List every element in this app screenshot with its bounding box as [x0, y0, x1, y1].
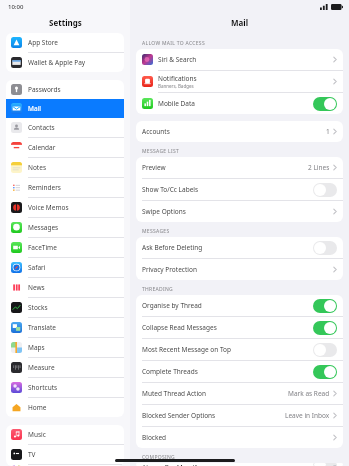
- staticText: Always Bcc Myself: [142, 463, 197, 466]
- button[interactable]: Home: [6, 398, 124, 417]
- staticText: Mobile Data: [158, 99, 195, 108]
- button[interactable]: Muted Thread Action: [136, 383, 343, 404]
- button[interactable]: Maps: [6, 338, 124, 357]
- staticText: Contacts: [28, 123, 55, 132]
- button[interactable]: Swipe Options: [136, 201, 343, 222]
- button[interactable]: Off: [313, 343, 337, 357]
- staticText: Safari: [28, 263, 46, 272]
- staticText: Ask Before Deleting: [142, 243, 203, 252]
- button[interactable]: Mobile Data: [136, 93, 343, 114]
- staticText: Siri & Search: [158, 55, 197, 64]
- staticText: Muted Thread Action: [142, 389, 207, 398]
- button[interactable]: Complete Threads: [136, 361, 343, 382]
- button[interactable]: On: [313, 321, 337, 335]
- button[interactable]: Show To/Cc Labels: [136, 179, 343, 200]
- button[interactable]: Translate: [6, 318, 124, 337]
- button[interactable]: Accounts: [136, 121, 343, 142]
- button[interactable]: Shortcuts: [6, 378, 124, 397]
- staticText: Collapse Read Messages: [142, 323, 217, 332]
- staticText: TV: [28, 450, 36, 459]
- button[interactable]: Collapse Read Messages: [136, 317, 343, 338]
- staticText: Blocked Sender Options: [142, 411, 216, 420]
- staticText: Leave in Inbox: [285, 411, 330, 420]
- button[interactable]: News: [6, 278, 124, 297]
- staticText: Reminders: [28, 183, 61, 192]
- button[interactable]: Ask Before Deleting: [136, 237, 343, 258]
- staticText: Wallet & Apple Pay: [28, 58, 86, 67]
- staticText: Complete Threads: [142, 367, 198, 376]
- staticText: Banners, Badges: [158, 83, 194, 89]
- staticText: Calendar: [28, 143, 56, 152]
- staticText: FaceTime: [28, 243, 57, 252]
- staticText: Shortcuts: [28, 383, 58, 392]
- staticText: Mail: [231, 17, 249, 28]
- button[interactable]: Most Recent Message on Top: [136, 339, 343, 360]
- button[interactable]: Reminders: [6, 178, 124, 197]
- button[interactable]: Privacy Protection: [136, 259, 343, 280]
- staticText: Maps: [28, 343, 45, 352]
- staticText: MESSAGE LIST: [142, 148, 180, 155]
- button[interactable]: Calendar: [6, 138, 124, 157]
- staticText: Measure: [28, 363, 55, 372]
- button[interactable]: Blocked: [136, 427, 343, 448]
- button[interactable]: Notifications: [136, 71, 343, 92]
- staticText: 2 Lines: [308, 163, 330, 172]
- staticText: Settings: [49, 17, 82, 28]
- button[interactable]: Preview: [136, 157, 343, 178]
- button[interactable]: Off: [313, 183, 337, 197]
- staticText: 10:00: [8, 3, 24, 11]
- staticText: Show To/Cc Labels: [142, 185, 199, 194]
- button[interactable]: Voice Memos: [6, 198, 124, 217]
- staticText: Voice Memos: [28, 203, 69, 212]
- staticText: MESSAGES: [142, 228, 170, 235]
- button[interactable]: Always Bcc Myself: [136, 463, 343, 466]
- button[interactable]: On: [313, 365, 337, 379]
- button[interactable]: Notes: [6, 158, 124, 177]
- staticText: Swipe Options: [142, 207, 186, 216]
- button[interactable]: Wallet & Apple Pay: [6, 53, 124, 72]
- staticText: Notifications: [158, 74, 197, 83]
- button[interactable]: Passwords: [6, 80, 124, 99]
- staticText: Mark as Read: [288, 389, 330, 398]
- button[interactable]: On: [313, 299, 337, 313]
- button[interactable]: Off: [313, 463, 337, 466]
- staticText: Most Recent Message on Top: [142, 345, 232, 354]
- button[interactable]: Photos: [6, 465, 124, 466]
- staticText: Notes: [28, 163, 46, 172]
- staticText: Mail: [28, 104, 41, 113]
- staticText: ALLOW MAIL TO ACCESS: [142, 40, 205, 47]
- button[interactable]: TV: [6, 445, 124, 464]
- staticText: News: [28, 283, 45, 292]
- staticText: Messages: [28, 223, 59, 232]
- button[interactable]: Contacts: [6, 118, 124, 137]
- button[interactable]: FaceTime: [6, 238, 124, 257]
- staticText: App Store: [28, 38, 58, 47]
- staticText: COMPOSING: [142, 454, 176, 461]
- button[interactable]: Messages: [6, 218, 124, 237]
- button[interactable]: Siri & Search: [136, 49, 343, 70]
- button[interactable]: Mail: [6, 99, 124, 118]
- staticText: 1: [326, 127, 330, 136]
- staticText: Music: [28, 430, 46, 439]
- button[interactable]: On: [313, 97, 337, 111]
- button[interactable]: Safari: [6, 258, 124, 277]
- button[interactable]: Music: [6, 425, 124, 444]
- staticText: THREADING: [142, 286, 174, 293]
- staticText: Home: [28, 403, 47, 412]
- staticText: Preview: [142, 163, 166, 172]
- button[interactable]: App Store: [6, 33, 124, 52]
- staticText: Accounts: [142, 127, 170, 136]
- staticText: Translate: [28, 323, 56, 332]
- button[interactable]: Off: [313, 241, 337, 255]
- button[interactable]: Stocks: [6, 298, 124, 317]
- staticText: Stocks: [28, 303, 48, 312]
- staticText: Passwords: [28, 85, 61, 94]
- button[interactable]: Organise by Thread: [136, 295, 343, 316]
- staticText: Privacy Protection: [142, 265, 197, 274]
- staticText: Blocked: [142, 433, 167, 442]
- staticText: Organise by Thread: [142, 301, 202, 310]
- button[interactable]: Blocked Sender Options: [136, 405, 343, 426]
- button[interactable]: Measure: [6, 358, 124, 377]
